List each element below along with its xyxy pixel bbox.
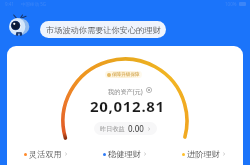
staticText: 稳健理财 (108, 149, 141, 159)
other: 隐藏资产 (146, 87, 152, 93)
staticText: 中国移动 5G (21, 1, 47, 7)
staticText: 我的资产(元) (108, 87, 143, 95)
button[interactable]: 稳健理财 (103, 149, 147, 159)
staticText: 保障升级保障 (112, 72, 140, 78)
button[interactable]: 进阶理财 (182, 149, 226, 159)
staticText: 100% (225, 1, 237, 7)
staticText: 昨日收益 (100, 125, 125, 133)
staticText: 市场波动你需要让你安心的理财 (46, 25, 161, 35)
staticText: 20,012.81 (90, 96, 165, 116)
staticText: 灵活双用 (29, 149, 62, 159)
button[interactable]: 昨日收益 (94, 122, 157, 135)
staticText: 进阶理财 (187, 149, 220, 159)
button[interactable]: 保障升级保障 (105, 71, 142, 78)
staticText: 9:41 (5, 1, 14, 7)
button[interactable]: 灵活双用 (24, 149, 68, 159)
staticText: 0.00 (128, 123, 144, 134)
button[interactable]: 市场波动你需要让你安心的理财 (40, 21, 166, 38)
